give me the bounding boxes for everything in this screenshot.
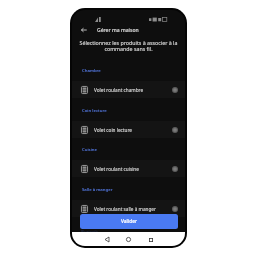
staticText: Coin lecture (82, 107, 107, 113)
staticText: Volet roulant cuisine (94, 166, 139, 172)
staticText: Gérer ma maison (97, 27, 139, 34)
button[interactable]: Volet roulant salle à manger (72, 200, 185, 217)
button[interactable]: Accueil (122, 233, 135, 246)
staticText: Bluetooth (81, 229, 98, 234)
button[interactable]: Retour (77, 23, 91, 37)
button[interactable]: Applications récentes (144, 233, 157, 246)
staticText: Valider (121, 218, 137, 225)
staticText: Sélectionnez les produits à associer à l… (79, 39, 178, 52)
button[interactable]: Volet roulant cuisine (72, 160, 185, 177)
button[interactable]: Valider (80, 214, 178, 229)
button[interactable]: Retour (100, 233, 113, 246)
staticText: Volet roulant chambre (94, 87, 144, 93)
button[interactable]: Volet roulant chambre (72, 81, 185, 98)
staticText: Chambre (82, 67, 101, 73)
button[interactable]: Volet coin lecture (72, 121, 185, 138)
staticText: Cuisine (82, 146, 97, 152)
staticText: Volet coin lecture (94, 127, 132, 133)
staticText: Volet roulant salle à manger (94, 206, 156, 212)
staticText: Salle à manger (82, 186, 113, 192)
